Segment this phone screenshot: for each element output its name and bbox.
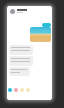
button[interactable]: Photo xyxy=(30,27,51,42)
button[interactable] xyxy=(9,67,30,76)
button[interactable] xyxy=(42,23,51,27)
button[interactable] xyxy=(9,56,33,66)
button[interactable]: Sticker xyxy=(20,88,24,92)
button[interactable]: Add xyxy=(8,88,12,92)
button[interactable]: Camera xyxy=(14,88,18,92)
button[interactable]: Avatar xyxy=(10,9,15,14)
button[interactable] xyxy=(9,45,33,55)
button[interactable]: Emoji xyxy=(26,88,30,92)
